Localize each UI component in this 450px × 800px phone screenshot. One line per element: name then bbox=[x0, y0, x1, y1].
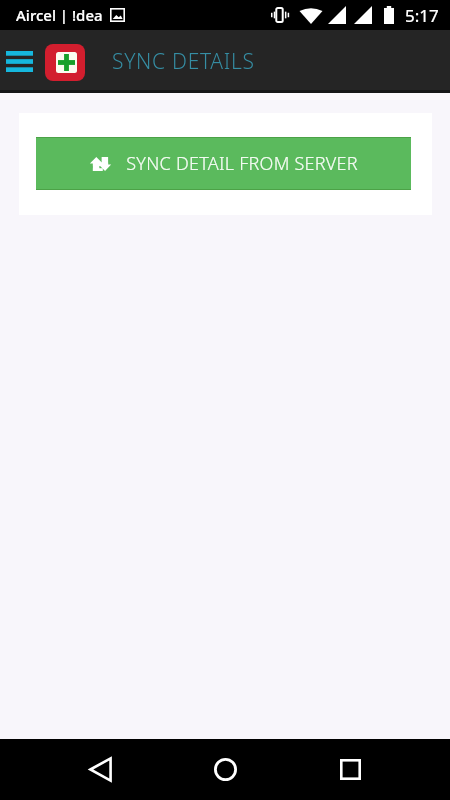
staticText: SYNC DETAIL FROM SERVER bbox=[126, 151, 358, 176]
button[interactable]: Home bbox=[163, 739, 288, 800]
button[interactable]: Back bbox=[38, 739, 163, 800]
button[interactable]: Recent apps bbox=[288, 739, 413, 800]
staticText: Aircel | !dea bbox=[16, 5, 103, 25]
button[interactable]: Open navigation menu bbox=[6, 42, 33, 82]
staticText: SYNC DETAILS bbox=[112, 47, 255, 76]
button[interactable]: SYNC DETAIL FROM SERVER bbox=[36, 137, 411, 190]
staticText: 5:17 bbox=[405, 4, 439, 27]
